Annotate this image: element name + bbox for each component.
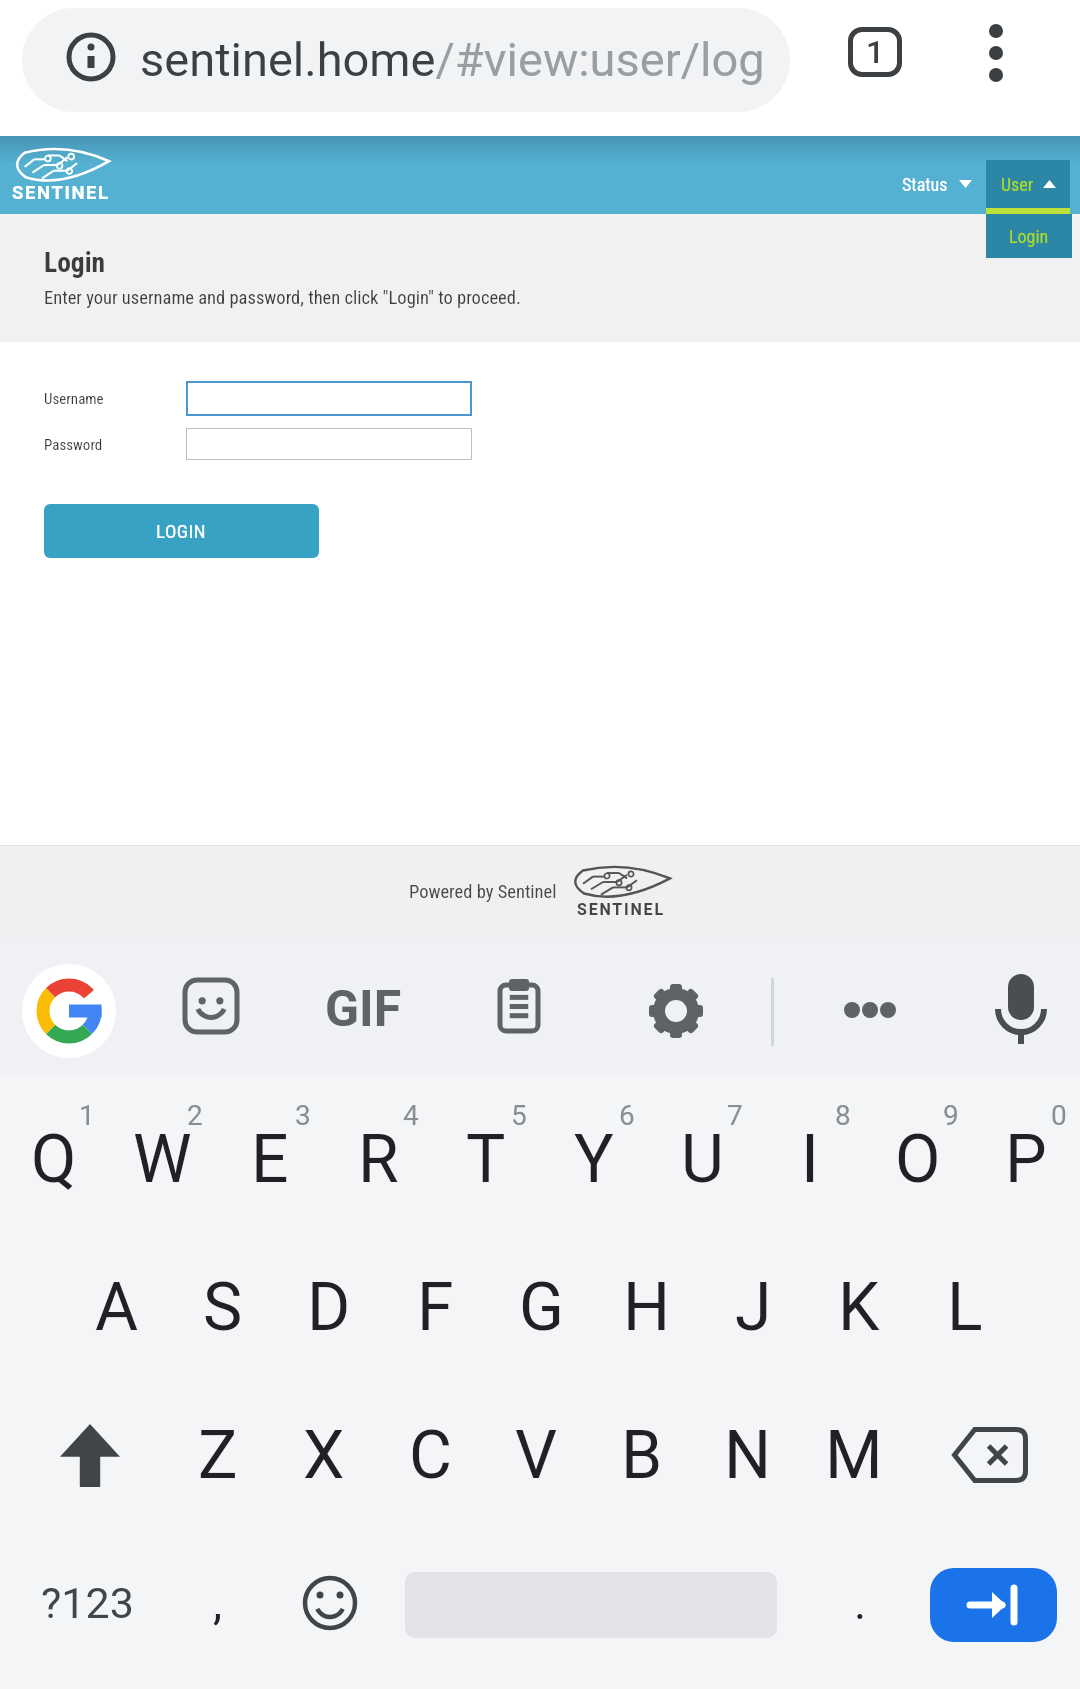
staticText: User [1001,174,1034,195]
staticText: Q [31,1121,77,1198]
staticText: B [621,1417,663,1494]
button[interactable]: L [912,1233,1018,1381]
staticText: LOGIN [156,520,207,542]
staticText: P [1005,1121,1047,1198]
button[interactable]: P [972,1085,1080,1233]
staticText: G [519,1269,564,1346]
button[interactable]: S [170,1233,276,1381]
button[interactable]: N [695,1381,801,1529]
staticText: 2 [187,1099,203,1132]
staticText: 6 [619,1099,635,1132]
button[interactable] [20,1381,160,1529]
button[interactable]: G [488,1233,594,1381]
button[interactable]: C [377,1381,483,1529]
button[interactable]: J [700,1233,806,1381]
staticText: T [466,1121,506,1198]
button[interactable]: F [382,1233,488,1381]
staticText: W [133,1121,192,1198]
staticText: Status [902,174,948,195]
staticText: sentinel.home/#view:user/log [140,32,765,87]
button[interactable]: 1 [848,27,902,77]
staticText: 8 [835,1099,851,1132]
staticText: V [515,1417,558,1494]
staticText: F [417,1269,454,1346]
button[interactable]: User [986,160,1070,214]
staticText: Enter your username and password, then c… [44,287,521,309]
staticText: H [623,1269,671,1346]
staticText: O [895,1121,941,1198]
staticText: L [947,1269,983,1346]
staticText: M [825,1417,883,1494]
button[interactable]: K [806,1233,912,1381]
staticText: 0 [1051,1099,1067,1132]
button[interactable]: R [324,1085,432,1233]
staticText: Password [44,436,103,454]
staticText: , [213,1576,223,1630]
staticText: K [838,1269,880,1346]
staticText: I [801,1121,819,1198]
button[interactable] [185,980,237,1032]
button[interactable] [498,979,540,1033]
staticText: E [251,1121,289,1198]
staticText: . [854,1576,867,1630]
button[interactable] [22,964,116,1058]
staticText: 9 [943,1099,959,1132]
button[interactable]: Status [886,154,988,214]
button[interactable]: B [589,1381,695,1529]
button[interactable]: ?123 [20,1529,155,1677]
staticText: R [358,1121,399,1198]
staticText: C [409,1417,452,1494]
button[interactable] [838,984,902,1036]
button[interactable]: W [108,1085,216,1233]
staticText: 1 [866,33,885,71]
button[interactable]: Q [0,1085,108,1233]
staticText: ?123 [41,1578,134,1628]
button[interactable]: D [276,1233,382,1381]
button[interactable]: Z [165,1381,271,1529]
staticText: S [203,1269,243,1346]
staticText: Y [574,1121,614,1198]
button[interactable] [648,983,704,1039]
button[interactable]: X [271,1381,377,1529]
staticText: Login [44,246,106,278]
button[interactable]: . [800,1529,920,1677]
button[interactable]: A [64,1233,170,1381]
staticText: 4 [403,1099,419,1132]
button[interactable] [285,1529,375,1677]
staticText: SENTINEL [12,182,110,204]
staticText: 7 [727,1099,743,1132]
button[interactable]: sentinel.home/#view:user/log [22,8,790,112]
staticText: X [303,1417,345,1494]
button[interactable] [915,1381,1065,1529]
button[interactable]: O [864,1085,972,1233]
button[interactable] [998,974,1044,1046]
button[interactable]: V [483,1381,589,1529]
button[interactable]: LOGIN [44,504,319,558]
button[interactable]: E [216,1085,324,1233]
staticText: SENTINEL [577,900,665,919]
button[interactable] [930,1568,1057,1642]
staticText: U [681,1121,724,1198]
staticText: Username [44,390,104,408]
button[interactable]: M [801,1381,907,1529]
button[interactable]: I [756,1085,864,1233]
staticText: A [95,1269,139,1346]
button[interactable] [186,428,472,460]
button[interactable]: Y [540,1085,648,1233]
staticText: 3 [295,1099,311,1132]
button[interactable]: T [432,1085,540,1233]
button[interactable]: Login [986,214,1072,258]
staticText: Z [198,1417,238,1494]
staticText: D [307,1269,351,1346]
button[interactable]: U [648,1085,756,1233]
staticText: 1 [79,1099,95,1132]
staticText: Login [1009,226,1049,247]
button[interactable]: H [594,1233,700,1381]
button[interactable] [186,381,472,416]
button[interactable]: , [165,1529,271,1677]
staticText: GIF [325,980,402,1032]
staticText: 5 [511,1099,527,1132]
button[interactable] [978,17,1014,89]
staticText: Powered by Sentinel [409,881,557,903]
